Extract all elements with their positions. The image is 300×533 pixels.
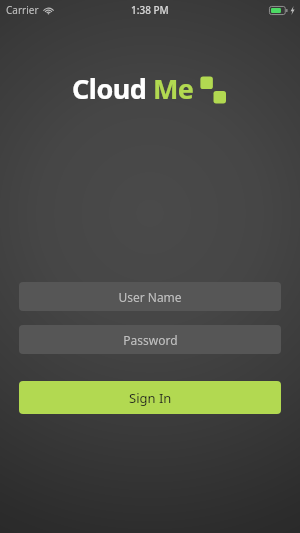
staticText: Cloud Me bbox=[72, 70, 194, 107]
button[interactable]: Password bbox=[19, 325, 281, 354]
staticText: Sign In bbox=[129, 389, 172, 407]
button[interactable]: Sign In bbox=[19, 381, 281, 414]
staticText: 1:38 PM bbox=[131, 3, 169, 17]
button[interactable]: User Name bbox=[19, 282, 281, 311]
staticText: Password bbox=[123, 332, 178, 348]
staticText: Carrier bbox=[6, 3, 39, 17]
staticText: User Name bbox=[118, 289, 182, 305]
